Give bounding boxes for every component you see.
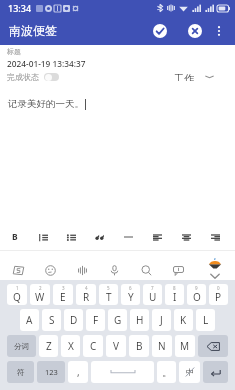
button[interactable]: Emoji [38,251,62,280]
staticText: W [35,290,45,304]
button[interactable]: M [175,335,195,357]
staticText: V [113,339,119,353]
button[interactable]: 6 [121,284,140,305]
button[interactable]: 中 [179,361,200,383]
staticText: M [180,339,190,353]
staticText: 1 [16,285,19,291]
staticText: Y [128,290,134,304]
staticText: S [49,313,55,327]
button[interactable]: 0 [209,284,228,305]
button[interactable]: 9 [187,284,206,305]
button[interactable]: C [83,335,103,357]
button[interactable]: B [129,335,149,357]
button[interactable]: 3 [53,284,73,305]
staticText: F [93,313,99,327]
staticText: C [90,339,97,353]
button[interactable]: G [108,309,127,331]
button[interactable]: , [68,361,88,383]
button[interactable]: 123 [37,361,65,383]
staticText: 3 [62,285,65,291]
button[interactable]: Align left [143,224,172,250]
button[interactable]: 7 [143,284,162,305]
staticText: 0 [217,285,220,291]
staticText: 标题 [7,47,21,56]
button[interactable]: Enter [203,361,228,383]
staticText: 6 [129,285,132,291]
button[interactable]: 2 [30,284,50,305]
button[interactable]: Save [147,18,173,44]
button[interactable]: L [196,309,215,331]
button[interactable]: Completion toggle [44,73,59,81]
staticText: E [60,290,66,304]
button[interactable]: Z [39,335,58,357]
button[interactable]: Backspace [198,335,228,357]
staticText: 分词 [14,342,29,351]
button[interactable]: Quote [85,224,114,250]
button[interactable]: K [174,309,193,331]
button[interactable]: H [130,309,149,331]
button[interactable]: 1 [7,284,27,305]
button[interactable]: 5 [99,284,118,305]
staticText: O [193,290,201,304]
staticText: 2024-01-19 13:34:37 [7,58,86,69]
staticText: T [106,290,112,304]
staticText: 9 [195,285,198,291]
staticText: 8 [173,285,176,291]
button[interactable]: X [61,335,80,357]
button[interactable]: V [106,335,126,357]
button[interactable]: Clipboard [166,251,190,280]
button[interactable]: 符 [7,361,34,383]
staticText: R [83,290,90,304]
staticText: 13:34 [8,2,32,14]
staticText: H [136,313,144,327]
staticText: P [215,290,222,304]
staticText: U [149,290,157,304]
button[interactable]: S [42,309,61,331]
button[interactable]: 。 [157,361,176,383]
button[interactable]: Align right [201,224,230,250]
staticText: N [158,339,166,353]
button[interactable]: A [20,309,39,331]
button[interactable]: Search [134,251,158,280]
staticText: X [68,339,74,353]
button[interactable]: 4 [76,284,96,305]
staticText: A [26,313,33,327]
button[interactable]: 分词 [7,335,36,357]
button[interactable]: F [86,309,105,331]
staticText: 。 [162,366,172,379]
staticText: G [114,313,122,327]
staticText: 2 [39,285,42,291]
button[interactable]: Voice changer [70,251,94,280]
button[interactable]: D [64,309,83,331]
staticText: 中 [186,367,194,377]
button[interactable]: Voice input [102,251,126,280]
staticText: 123 [45,367,58,377]
button[interactable]: Numbered list [29,224,57,250]
staticText: D [70,313,78,327]
staticText: L [203,313,209,327]
staticText: 记录美好的一天。 [8,98,84,110]
staticText: 4 [85,285,88,291]
button[interactable]: Align center [172,224,201,250]
staticText: 5 [107,285,110,291]
button[interactable]: Space [91,361,154,383]
button[interactable]: N [152,335,172,357]
button[interactable]: Bold [1,224,29,250]
staticText: B [136,339,143,353]
staticText: 南波便签 [9,23,57,38]
staticText: K [180,313,187,327]
staticText: Z [46,339,52,353]
button[interactable]: 8 [165,284,184,305]
staticText: 工作 [174,72,194,81]
button[interactable]: Bullet list [57,224,85,250]
button[interactable]: 工作 [173,69,228,84]
button[interactable]: Horizontal rule [114,224,143,250]
button[interactable]: Sogou input [6,251,30,280]
button[interactable]: J [152,309,171,331]
staticText: 7 [151,285,154,291]
button[interactable]: More options [208,20,230,42]
staticText: B [12,231,18,243]
staticText: I [173,290,177,304]
button[interactable]: Cancel [182,18,208,44]
button[interactable]: Hide keyboard [203,251,227,280]
